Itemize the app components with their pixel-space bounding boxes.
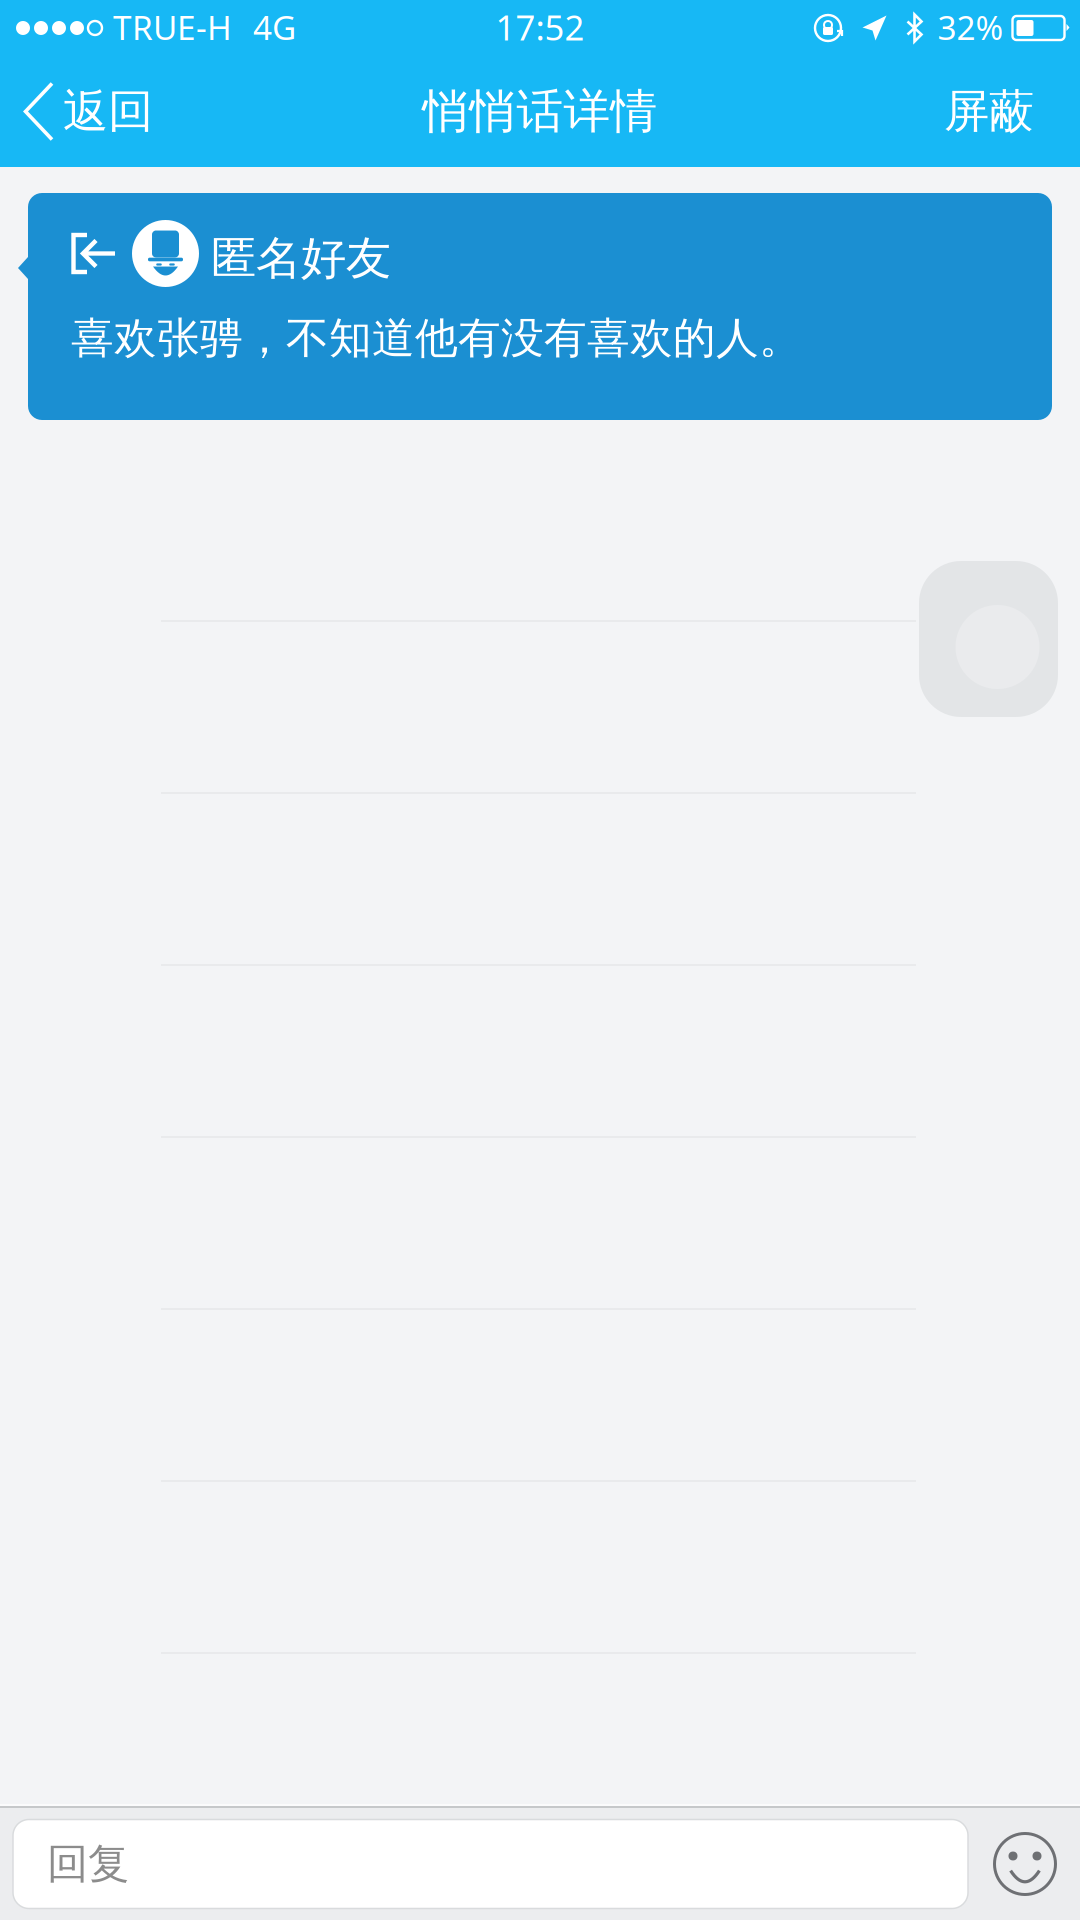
staticText: TRUE-H xyxy=(113,5,232,49)
button[interactable]: 回复 xyxy=(13,1819,968,1908)
staticText: 屏蔽 xyxy=(944,84,1034,139)
button[interactable]: 返回 xyxy=(0,56,173,167)
button[interactable]: Emoji xyxy=(992,1831,1058,1897)
staticText: 返回 xyxy=(63,84,153,139)
staticText: 匿名好友 xyxy=(211,231,391,286)
staticText: 4G xyxy=(253,5,296,49)
staticText: 喜欢张骋，不知道他有没有喜欢的人。 xyxy=(71,312,802,364)
staticText: 17:52 xyxy=(495,4,584,50)
staticText: 回复 xyxy=(47,1839,129,1889)
staticText: 32% xyxy=(937,5,1003,49)
staticText: 悄悄话详情 xyxy=(422,83,657,140)
button[interactable]: 屏蔽 xyxy=(920,56,1080,167)
